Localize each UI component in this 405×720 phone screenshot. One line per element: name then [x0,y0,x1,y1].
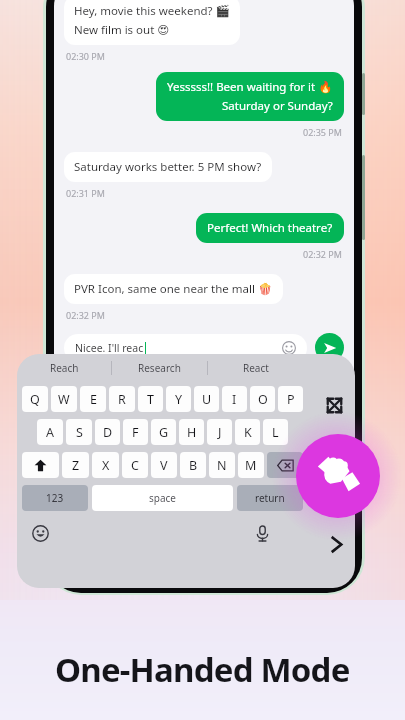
button[interactable]: Yesssss!! Been waiting for it 🔥 [156,72,344,121]
staticText: V [160,457,168,474]
button[interactable]: H [179,419,204,445]
staticText: PVR Icon, same one near the mall 🍿 [74,281,273,297]
button[interactable]: PVR Icon, same one near the mall 🍿 [64,274,283,304]
staticText: K [244,424,252,441]
button[interactable]: Saturday works better. 5 PM show? [64,152,272,182]
button[interactable]: E [80,386,106,412]
other: Emoji [282,341,296,355]
button[interactable]: Q [22,386,48,412]
button[interactable]: D [95,419,120,445]
button[interactable]: space [92,485,233,511]
staticText: 02:31 PM [66,187,105,199]
button[interactable]: R [109,386,135,412]
button[interactable]: One-handed mode handle [296,434,380,518]
staticText: R [118,391,126,408]
button[interactable]: Nicee. I'll reac [64,334,307,362]
button[interactable]: Expand keyboard [323,394,345,416]
staticText: U [202,391,212,408]
staticText: M [245,457,257,474]
staticText: G [159,424,169,441]
button[interactable]: W [51,386,77,412]
staticText: O [258,391,268,408]
staticText: F [132,424,139,441]
staticText: E [90,391,97,408]
button[interactable]: Z [62,452,89,478]
staticText: L [272,424,279,441]
staticText: S [76,424,83,441]
button[interactable]: A [37,419,63,445]
button[interactable]: Reach [17,354,111,382]
button[interactable]: return [237,485,303,511]
button[interactable]: F [123,419,148,445]
button[interactable]: 123 [22,485,88,511]
button[interactable]: M [238,452,264,478]
staticText: J [218,424,222,441]
button[interactable]: K [235,419,260,445]
staticText: 123 [46,491,64,505]
button[interactable]: Backspace [267,452,303,478]
button[interactable]: L [263,419,288,445]
button[interactable]: I [222,386,247,412]
staticText: D [103,424,113,441]
staticText: New film is out 😍 [74,22,170,38]
staticText: return [255,491,285,505]
staticText: I [232,391,237,408]
button[interactable]: O [250,386,275,412]
button[interactable]: Send [315,333,344,362]
staticText: Nicee. I'll reac [75,341,144,355]
staticText: 02:32 PM [303,248,342,260]
staticText: P [287,391,295,408]
button[interactable]: V [151,452,177,478]
button[interactable]: P [278,386,303,412]
staticText: 02:32 PM [66,309,105,321]
button[interactable]: U [194,386,219,412]
button[interactable]: Perfect! Which theatre? [196,213,344,243]
staticText: X [102,457,110,474]
staticText: T [147,391,154,408]
button[interactable]: Hey, movie this weekend? 🎬 [64,0,240,45]
staticText: Hey, movie this weekend? 🎬 [74,3,230,19]
button[interactable]: T [138,386,163,412]
button[interactable]: N [209,452,235,478]
staticText: Research [138,361,181,375]
staticText: Reach [50,361,79,375]
button[interactable]: Switch side [323,531,349,557]
button[interactable]: Voice input [251,522,273,544]
button[interactable]: X [92,452,119,478]
button[interactable]: B [180,452,206,478]
staticText: B [189,457,198,474]
staticText: Saturday or Sunday? [222,98,333,114]
button[interactable]: Y [166,386,191,412]
staticText: Saturday works better. 5 PM show? [74,159,262,175]
button[interactable]: Research [112,354,207,382]
staticText: 02:30 PM [66,50,105,62]
staticText: Yesssss!! Been waiting for it 🔥 [167,79,333,95]
staticText: W [58,391,70,408]
button[interactable]: Shift [22,452,59,478]
staticText: H [187,424,197,441]
staticText: Y [175,391,183,408]
button[interactable]: React [208,354,303,382]
button[interactable]: Emoji keyboard [29,522,51,544]
button[interactable]: J [207,419,232,445]
staticText: Perfect! Which theatre? [207,220,333,236]
button[interactable]: G [151,419,176,445]
staticText: Z [72,457,80,474]
staticText: One-Handed Mode [55,647,350,692]
staticText: N [217,457,227,474]
staticText: A [46,424,54,441]
staticText: C [131,457,139,474]
staticText: React [243,361,269,375]
staticText: 02:35 PM [303,126,342,138]
staticText: space [149,491,176,505]
button[interactable]: C [122,452,148,478]
staticText: Q [30,391,40,408]
button[interactable]: S [66,419,92,445]
